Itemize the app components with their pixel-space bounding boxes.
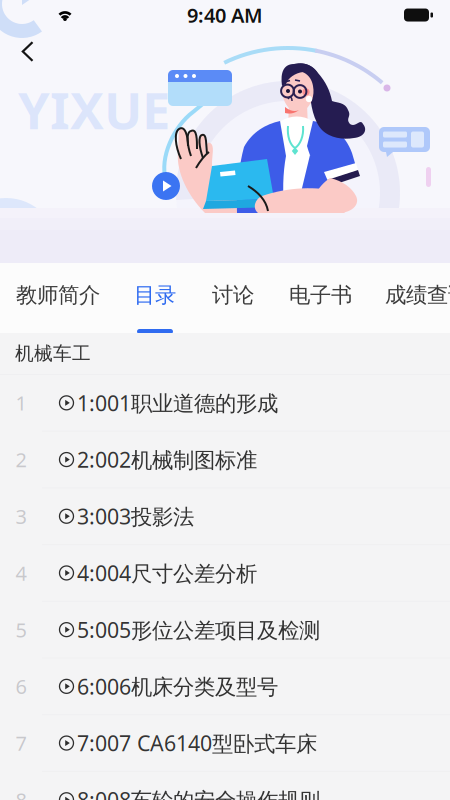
staticText: 9:40 AM xyxy=(187,2,263,28)
staticText: 机械车工 xyxy=(15,342,91,365)
button[interactable]: 4 xyxy=(0,545,450,602)
staticText: 3 xyxy=(15,503,26,530)
button[interactable]: 5 xyxy=(0,602,450,658)
button[interactable]: 8 xyxy=(0,772,450,800)
staticText: YIXUE xyxy=(18,76,170,143)
staticText: 5 xyxy=(15,616,26,643)
staticText: 8:008车轮的安全操作规则 xyxy=(77,786,320,800)
staticText: 7 xyxy=(15,730,26,756)
button[interactable]: 教师简介 xyxy=(0,263,116,333)
button[interactable]: 成绩查询 xyxy=(369,263,450,333)
button[interactable]: 2 xyxy=(0,432,450,488)
button[interactable]: Back xyxy=(12,32,44,71)
staticText: 8 xyxy=(15,786,26,800)
staticText: 成绩查询 xyxy=(385,282,450,308)
staticText: 1 xyxy=(15,390,26,416)
button[interactable]: 6 xyxy=(0,658,450,715)
staticText: 教师简介 xyxy=(16,282,100,308)
staticText: 3:003投影法 xyxy=(77,502,194,530)
staticText: 6 xyxy=(15,673,26,700)
staticText: 讨论 xyxy=(212,282,254,308)
button[interactable]: 目录 xyxy=(116,263,194,333)
button[interactable]: 1 xyxy=(0,375,450,432)
staticText: 目录 xyxy=(134,282,176,308)
staticText: 2 xyxy=(15,446,26,473)
staticText: 1:001职业道德的形成 xyxy=(77,389,278,417)
button[interactable]: 讨论 xyxy=(194,263,272,333)
button[interactable]: 3 xyxy=(0,488,450,545)
staticText: 4 xyxy=(15,560,26,586)
staticText: 6:006机床分类及型号 xyxy=(77,672,278,700)
staticText: 5:005形位公差项目及检测 xyxy=(77,615,320,644)
staticText: 电子书 xyxy=(289,282,352,308)
button[interactable]: 7 xyxy=(0,715,450,772)
staticText: 4:004尺寸公差分析 xyxy=(77,559,257,587)
staticText: 7:007 CA6140型卧式车床 xyxy=(77,729,317,757)
staticText: 2:002机械制图标准 xyxy=(77,445,257,474)
button[interactable]: 电子书 xyxy=(272,263,369,333)
